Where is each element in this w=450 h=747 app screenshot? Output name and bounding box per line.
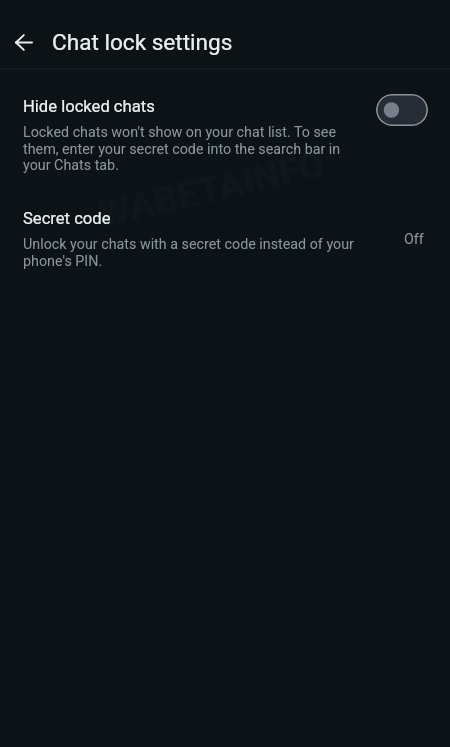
staticText: Locked chats won't show on your chat lis…	[23, 124, 363, 173]
staticText: Chat lock settings	[52, 29, 233, 55]
staticText: Hide locked chats	[23, 97, 155, 116]
button[interactable]: Hide locked chats	[0, 97, 450, 173]
staticText: Secret code	[23, 209, 111, 228]
button[interactable]: Back	[4, 22, 44, 62]
staticText: Unlock your chats with a secret code ins…	[23, 236, 363, 269]
staticText: WABETAINFO	[94, 143, 329, 236]
staticText: Off	[404, 231, 424, 248]
button[interactable]: Hide locked chats toggle, off	[376, 94, 428, 126]
button[interactable]: Secret code	[0, 209, 450, 269]
button[interactable]: Off	[404, 231, 434, 248]
